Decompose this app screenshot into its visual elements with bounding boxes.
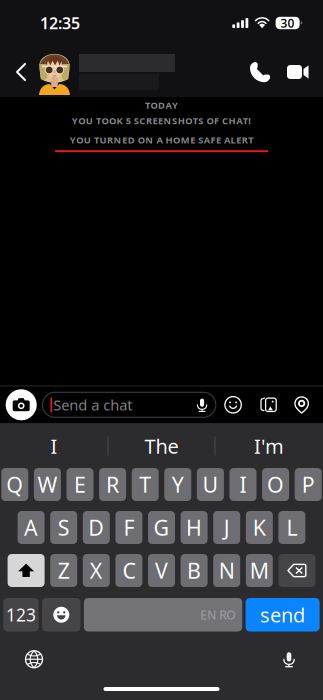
staticText: TODAY [145, 99, 178, 111]
button[interactable]: J [213, 511, 240, 544]
staticText: F [123, 513, 134, 542]
button[interactable]: T [132, 468, 159, 501]
staticText: K [253, 513, 266, 542]
staticText: N [219, 556, 235, 585]
button[interactable]: A [18, 511, 45, 544]
staticText: The [144, 433, 178, 459]
button[interactable]: The [108, 424, 214, 468]
button[interactable]: Emoji keyboard [42, 598, 80, 631]
button[interactable]: W [34, 468, 61, 501]
button[interactable]: Dictation [267, 644, 311, 674]
button[interactable]: M [246, 554, 273, 587]
staticText: B [187, 556, 201, 585]
button[interactable]: 123 [3, 598, 39, 631]
staticText: H [186, 513, 202, 542]
staticText: EN RO [200, 607, 235, 623]
staticText: send [260, 601, 305, 628]
button[interactable]: Location [285, 392, 318, 418]
staticText: Send a chat [53, 395, 132, 415]
button[interactable]: H [181, 511, 208, 544]
button[interactable]: F [115, 511, 142, 544]
staticText: YOU TOOK 5 SCREENSHOTS OF CHAT! [72, 114, 251, 127]
staticText: P [302, 470, 315, 499]
staticText: O [267, 470, 284, 499]
button[interactable]: Delete [278, 554, 315, 587]
staticText: I [239, 470, 246, 499]
button[interactable]: Shift [8, 554, 45, 587]
staticText: Y [172, 470, 184, 499]
staticText: 123 [6, 603, 36, 626]
button[interactable]: X [83, 554, 110, 587]
staticText: W [37, 470, 57, 499]
staticText: R [106, 470, 119, 499]
button[interactable]: Send a chat [42, 392, 216, 417]
button[interactable]: K [246, 511, 273, 544]
button[interactable]: I'm [215, 424, 322, 468]
staticText: Z [58, 556, 70, 585]
button[interactable]: N [213, 554, 240, 587]
button[interactable]: R [99, 468, 126, 501]
staticText: J [224, 513, 230, 542]
button[interactable]: Stickers [250, 392, 285, 418]
button[interactable]: Audio call [241, 50, 279, 94]
staticText: G [153, 513, 169, 542]
staticText: X [90, 556, 103, 585]
button[interactable]: Back [4, 50, 38, 94]
button[interactable]: V [148, 554, 175, 587]
button[interactable]: I [0, 424, 107, 468]
button[interactable]: D [83, 511, 110, 544]
staticText: Q [6, 470, 23, 499]
staticText: I'm [254, 433, 284, 459]
button[interactable]: Camera [0, 389, 42, 420]
button[interactable]: S [50, 511, 77, 544]
button[interactable]: B [181, 554, 208, 587]
staticText: 12:35 [40, 12, 80, 34]
staticText: A [24, 513, 38, 542]
button[interactable]: send [246, 598, 320, 631]
staticText: S [58, 513, 70, 542]
button[interactable]: Q [1, 468, 28, 501]
button[interactable]: I [229, 468, 256, 501]
staticText: M [250, 556, 269, 585]
staticText: E [74, 470, 86, 499]
button[interactable]: P [295, 468, 322, 501]
button[interactable]: U [197, 468, 224, 501]
staticText: V [155, 556, 168, 585]
button[interactable]: E [66, 468, 93, 501]
button[interactable]: Z [50, 554, 77, 587]
button[interactable]: Emoji [216, 392, 250, 418]
button[interactable]: Video call [279, 50, 317, 94]
button[interactable]: C [115, 554, 142, 587]
button[interactable]: Y [164, 468, 191, 501]
staticText: I [50, 433, 57, 459]
staticText: D [88, 513, 104, 542]
button[interactable]: G [148, 511, 175, 544]
staticText: L [286, 513, 297, 542]
staticText: 30 [281, 15, 295, 31]
staticText: U [202, 470, 218, 499]
staticText: T [139, 470, 151, 499]
staticText: C [122, 556, 135, 585]
button[interactable]: Switch keyboard [12, 644, 56, 674]
button[interactable]: O [262, 468, 289, 501]
button[interactable]: Space [84, 598, 242, 631]
staticText: YOU TURNED ON A HOME SAFE ALERT [70, 134, 253, 146]
button[interactable]: L [278, 511, 305, 544]
